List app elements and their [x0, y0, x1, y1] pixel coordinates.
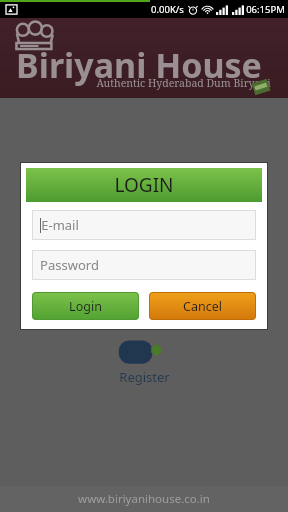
staticText: Biriyani House [16, 42, 262, 88]
staticText: Authentic Hyderabad Dum Biryani [96, 76, 271, 90]
button[interactable]: Login [32, 292, 139, 320]
button[interactable]: Password [32, 250, 256, 280]
button[interactable]: Cancel [149, 292, 256, 320]
staticText: Register [119, 368, 170, 386]
staticText: LOGIN [114, 172, 174, 198]
staticText: Login [69, 298, 102, 315]
staticText: 0.00K/s [151, 3, 184, 16]
staticText: 06:15PM [246, 3, 285, 16]
staticText: www.biriyanihouse.co.in [78, 491, 210, 507]
staticText: E-mail [41, 216, 79, 234]
button[interactable]: E-mail [32, 210, 256, 240]
button[interactable]: Register [100, 336, 188, 388]
staticText: Password [40, 256, 99, 274]
staticText: Cancel [183, 298, 222, 315]
